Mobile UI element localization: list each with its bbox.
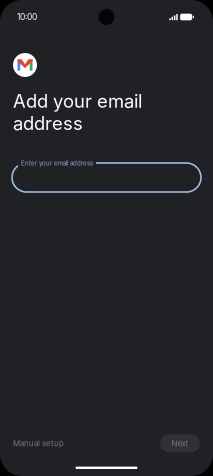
staticText: 10:00 [17, 12, 37, 22]
staticText: Enter your email address [21, 159, 93, 167]
staticText: Add your email address [13, 90, 142, 134]
staticText: Manual setup [13, 439, 64, 448]
staticText: Next [171, 439, 188, 448]
button[interactable]: Manual setup [13, 433, 64, 454]
button[interactable]: Next [160, 434, 200, 452]
button[interactable]: Enter your email address [0, 154, 213, 192]
